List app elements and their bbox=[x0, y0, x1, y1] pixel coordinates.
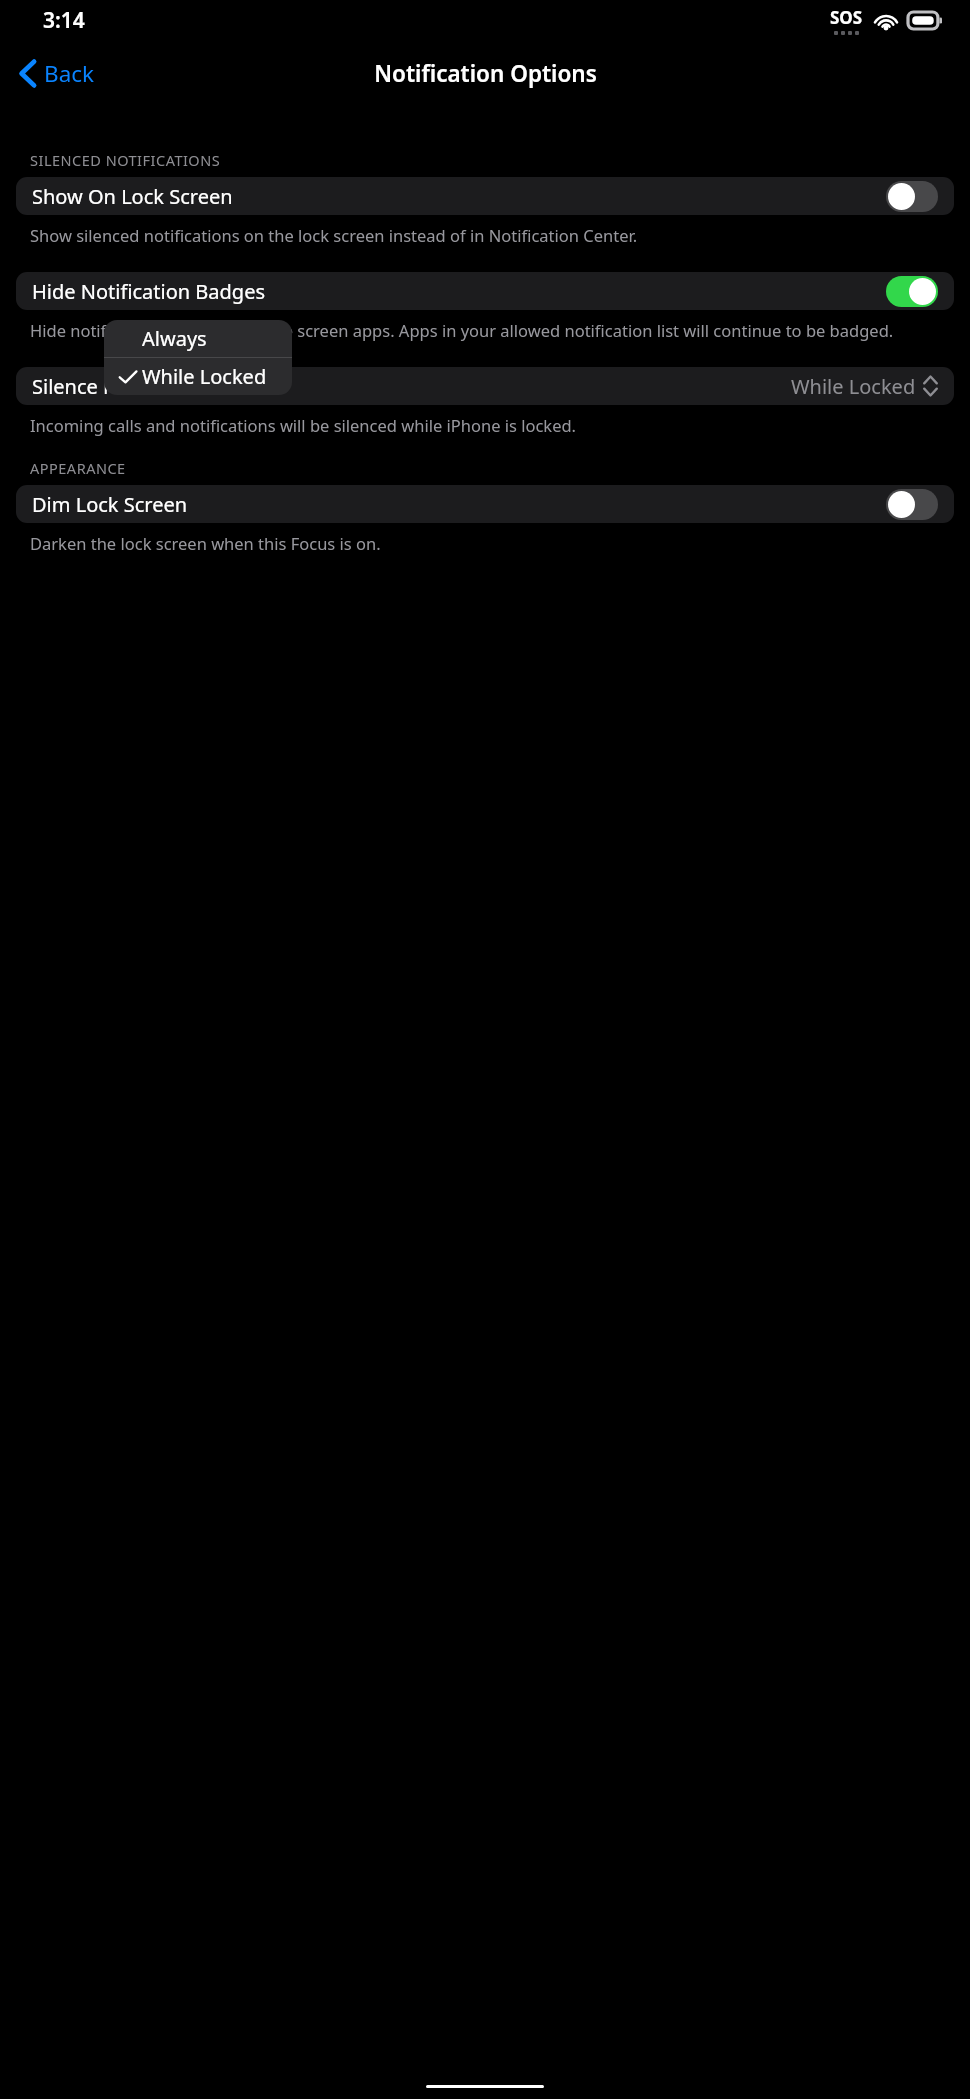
button[interactable]: Toggle on bbox=[886, 276, 938, 307]
staticText: Silence Notifications bbox=[32, 373, 222, 400]
staticText: Back bbox=[44, 58, 95, 89]
staticText: Show silenced notifications on the lock … bbox=[30, 224, 638, 246]
staticText: APPEARANCE bbox=[30, 458, 126, 478]
button[interactable]: Always bbox=[104, 320, 292, 357]
button[interactable]: While Locked bbox=[104, 358, 292, 395]
staticText: 3:14 bbox=[43, 6, 85, 35]
button[interactable]: Toggle off bbox=[886, 181, 938, 212]
button[interactable]: Toggle off bbox=[886, 489, 938, 520]
button[interactable]: Show On Lock Screen bbox=[16, 177, 954, 215]
staticText: SOS bbox=[830, 6, 863, 29]
staticText: Hide Notification Badges bbox=[32, 278, 266, 305]
button[interactable]: Silence Notifications bbox=[16, 367, 954, 405]
staticText: While Locked bbox=[142, 363, 267, 390]
staticText: Incoming calls and notifications will be… bbox=[30, 414, 577, 436]
staticText: Hide notification badges on home screen … bbox=[30, 319, 894, 341]
staticText: SILENCED NOTIFICATIONS bbox=[30, 150, 221, 170]
button[interactable]: Back bbox=[0, 52, 107, 95]
staticText: While Locked bbox=[791, 373, 916, 400]
staticText: Always bbox=[142, 325, 207, 352]
other: Change option bbox=[923, 375, 938, 397]
staticText: Show On Lock Screen bbox=[32, 183, 233, 210]
button[interactable]: Hide Notification Badges bbox=[16, 272, 954, 310]
staticText: Notification Options bbox=[374, 58, 597, 89]
staticText: Dim Lock Screen bbox=[32, 491, 188, 518]
staticText: Darken the lock screen when this Focus i… bbox=[30, 532, 381, 554]
button[interactable]: Dim Lock Screen bbox=[16, 485, 954, 523]
